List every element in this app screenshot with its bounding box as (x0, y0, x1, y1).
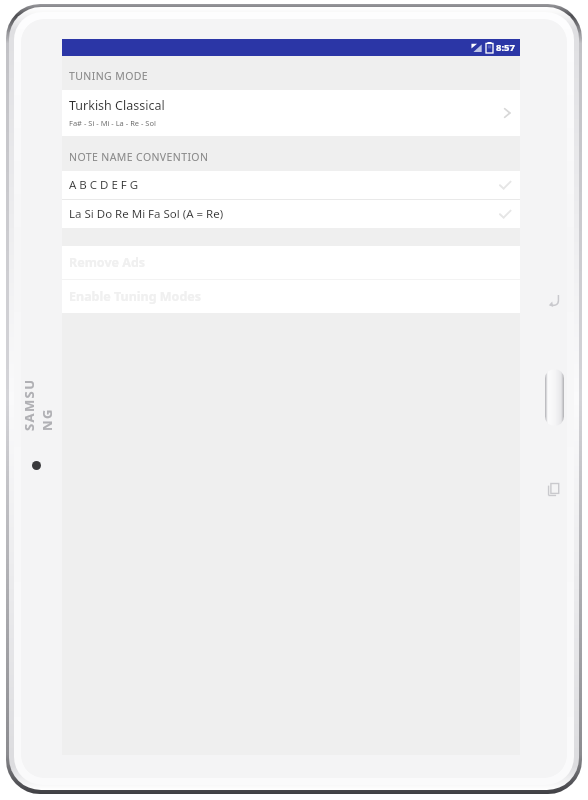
button[interactable]: A B C D E F G (62, 171, 520, 199)
staticText: Fa# - Si - Mi - La - Re - Sol (69, 118, 156, 128)
staticText: Remove Ads (69, 254, 146, 271)
button[interactable]: Recent apps (542, 478, 564, 500)
button[interactable]: Turkish Classical (62, 90, 520, 136)
staticText: 8:57 (496, 41, 515, 54)
staticText: TUNING MODE (69, 69, 149, 83)
button[interactable]: Back (542, 289, 564, 311)
button[interactable]: La Si Do Re Mi Fa Sol (A = Re) (62, 200, 520, 228)
staticText: La Si Do Re Mi Fa Sol (A = Re) (69, 206, 498, 222)
staticText: NOTE NAME CONVENTION (69, 150, 209, 164)
staticText: Enable Tuning Modes (69, 288, 202, 305)
staticText: Turkish Classical (69, 97, 165, 114)
staticText: SAMSUNG (20, 371, 56, 431)
button[interactable]: Home (545, 369, 564, 426)
staticText: A B C D E F G (69, 177, 498, 193)
